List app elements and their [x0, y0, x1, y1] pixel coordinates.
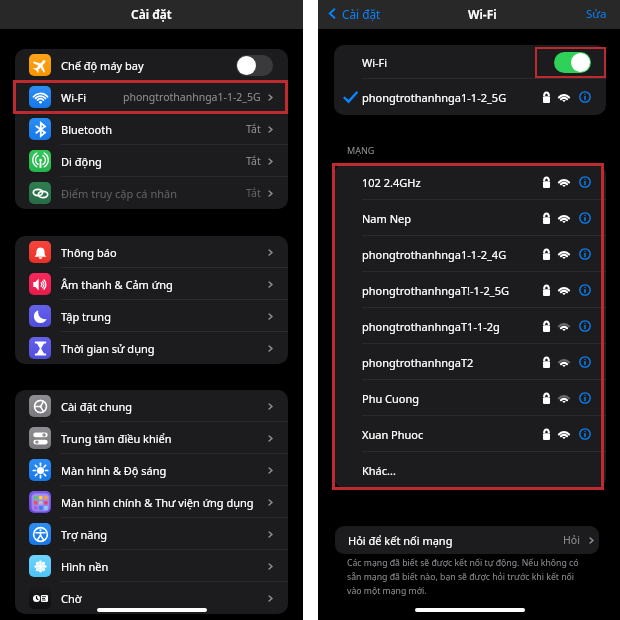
button[interactable]: phongtrothanhngaT!-1-2_5G [334, 272, 606, 308]
button[interactable]: Bluetooth [15, 113, 288, 145]
button[interactable]: Di động [15, 145, 288, 177]
button[interactable]: Hình nền [15, 550, 288, 582]
button[interactable]: Chế độ máy bay [15, 49, 288, 81]
staticText: phongtrothanhnga1-1-2_4G [362, 247, 507, 262]
button[interactable]: Nam Nep [334, 200, 606, 236]
staticText: Cài đặt chung [61, 399, 133, 414]
staticText: Màn hình & Độ sáng [61, 463, 167, 478]
staticText: phongtrothanhngaT1-1-2g [362, 319, 500, 334]
button[interactable]: Thời gian sử dụng [15, 332, 288, 364]
staticText: Hình nền [61, 559, 109, 574]
button[interactable]: phongtrothanhnga1-1-2_4G [334, 236, 606, 272]
staticText: Tập trung [61, 309, 111, 324]
staticText: Trung tâm điều khiển [61, 431, 172, 446]
staticText: Xuan Phuoc [362, 427, 424, 442]
button[interactable]: 102 2.4GHz [334, 164, 606, 200]
other: Connected [344, 91, 357, 104]
staticText: Các mạng đã biết sẽ được kết nối tự động… [347, 557, 582, 596]
staticText: Khác... [362, 463, 396, 478]
button[interactable]: Màn hình & Độ sáng [15, 454, 288, 486]
staticText: Chế độ máy bay [61, 58, 144, 73]
button[interactable]: phongtrothanhngaT2 [334, 344, 606, 380]
staticText: 102 2.4GHz [362, 175, 421, 190]
staticText: phongtrothanhngaT2 [362, 355, 474, 370]
button[interactable]: Âm thanh & Cảm ứng [15, 268, 288, 300]
staticText: MẠNG [347, 144, 375, 156]
other: Info [579, 176, 591, 188]
staticText: Cài đặt [342, 6, 381, 22]
staticText: Điểm truy cập cá nhân [61, 186, 177, 201]
staticText: Sửa [586, 6, 607, 22]
other: Info [579, 392, 591, 404]
staticText: Hỏi để kết nối mạng [348, 533, 453, 548]
button[interactable]: Trung tâm điều khiển [15, 422, 288, 454]
staticText: Tắt [246, 122, 261, 136]
button[interactable]: Điểm truy cập cá nhân [15, 177, 288, 209]
staticText: Tắt [246, 154, 261, 168]
staticText: Nam Nep [362, 211, 412, 226]
button[interactable]: phongtrothanhngaT1-1-2g [334, 308, 606, 344]
staticText: Phu Cuong [362, 391, 420, 406]
staticText: Trợ năng [61, 527, 108, 542]
other: Info [579, 356, 591, 368]
button[interactable]: Wi-Fi [15, 81, 288, 113]
button[interactable]: Phu Cuong [334, 380, 606, 416]
staticText: Wi-Fi [362, 55, 388, 70]
other: Info [579, 91, 591, 103]
staticText: phongtrothanhnga1-1-2_5G [362, 90, 507, 105]
staticText: phongtrothanhnga1-1-2_5G [123, 90, 261, 104]
button[interactable]: Toggle [236, 55, 273, 76]
button[interactable]: Toggle [554, 52, 591, 73]
staticText: Wi-Fi [468, 6, 497, 22]
button[interactable]: Trợ năng [15, 518, 288, 550]
button[interactable]: Khác... [334, 452, 606, 488]
other: Info [579, 320, 591, 332]
other: Info [579, 212, 591, 224]
staticText: Âm thanh & Cảm ứng [61, 277, 173, 292]
button[interactable]: Wi-Fi [334, 45, 606, 79]
button[interactable]: Sửa [584, 0, 609, 28]
other: Info [579, 428, 591, 440]
other: Info [579, 248, 591, 260]
staticText: Di động [61, 154, 102, 169]
staticText: Wi-Fi [61, 90, 87, 105]
staticText: Bluetooth [61, 122, 113, 137]
staticText: Chờ [61, 591, 82, 606]
staticText: phongtrothanhngaT!-1-2_5G [362, 283, 509, 298]
staticText: Màn hình chính & Thư viện ứng dụng [61, 495, 254, 510]
button[interactable]: Cài đặt [328, 0, 381, 28]
button[interactable]: Hỏi để kết nối mạng [335, 526, 599, 554]
button[interactable]: Xuan Phuoc [334, 416, 606, 452]
button[interactable]: Cài đặt chung [15, 390, 288, 422]
button[interactable]: Thông báo [15, 236, 288, 268]
staticText: Thông báo [61, 245, 117, 260]
button[interactable]: Màn hình chính & Thư viện ứng dụng [15, 486, 288, 518]
button[interactable]: Connected [334, 79, 606, 115]
staticText: Tắt [246, 186, 261, 200]
staticText: Hỏi [563, 533, 580, 547]
staticText: Cài đặt [131, 6, 172, 22]
button[interactable]: Chờ [15, 582, 288, 614]
staticText: Thời gian sử dụng [61, 341, 155, 356]
other: Info [579, 284, 591, 296]
button[interactable]: Tập trung [15, 300, 288, 332]
